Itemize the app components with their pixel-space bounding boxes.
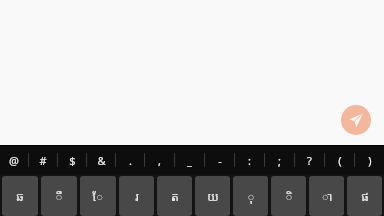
button[interactable]: . — [116, 146, 144, 174]
button[interactable]: Send — [341, 105, 371, 135]
button[interactable]: រ — [119, 176, 154, 216]
staticText: . — [129, 153, 132, 168]
staticText: ិ — [285, 188, 293, 204]
staticText: : — [248, 153, 251, 168]
staticText: ; — [278, 153, 281, 168]
staticText: ផ — [361, 188, 369, 204]
button[interactable]: # — [29, 146, 57, 174]
button[interactable]: & — [87, 146, 115, 174]
staticText: _ — [187, 153, 192, 168]
staticText: ( — [338, 153, 342, 168]
button[interactable]: ផ — [347, 176, 382, 216]
button[interactable]: ែ — [80, 176, 116, 216]
staticText: ? — [307, 153, 312, 168]
button[interactable]: ឆ — [2, 176, 38, 216]
button[interactable]: ( — [325, 146, 354, 174]
button[interactable]: ត — [157, 176, 192, 216]
button[interactable]: យ — [195, 176, 230, 216]
staticText: & — [97, 153, 106, 168]
button[interactable]: $ — [58, 146, 86, 174]
button[interactable]: @ — [0, 146, 28, 174]
staticText: ែ — [92, 188, 104, 204]
staticText: ) — [368, 153, 372, 168]
button[interactable]: ា — [309, 176, 344, 216]
staticText: ត — [171, 188, 179, 204]
staticText: @ — [9, 153, 19, 168]
staticText: - — [218, 153, 222, 168]
button[interactable]: ; — [265, 146, 294, 174]
staticText: រ — [135, 188, 139, 204]
button[interactable]: ? — [295, 146, 324, 174]
staticText: ឆ — [16, 188, 24, 204]
staticText: , — [158, 153, 161, 168]
button[interactable]: , — [145, 146, 174, 174]
staticText: # — [39, 153, 47, 168]
button[interactable]: - — [205, 146, 234, 174]
staticText: ា — [321, 188, 333, 204]
staticText: ឹ — [55, 188, 63, 204]
button[interactable]: ឹ — [41, 176, 77, 216]
button[interactable]: ិ — [271, 176, 306, 216]
button[interactable]: _ — [175, 146, 204, 174]
button[interactable]: : — [235, 146, 264, 174]
button[interactable]: ុ — [233, 176, 268, 216]
button[interactable]: ) — [355, 146, 384, 174]
staticText: យ — [207, 188, 219, 204]
staticText: ុ — [247, 188, 255, 204]
staticText: $ — [69, 153, 76, 168]
